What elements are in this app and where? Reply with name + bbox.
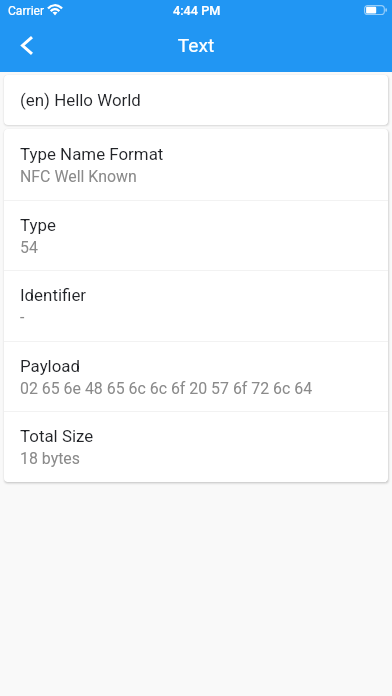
staticText: - (20, 308, 25, 327)
staticText: Type Name Format (20, 144, 164, 164)
button[interactable]: Type Name Format (4, 129, 388, 200)
staticText: 18 bytes (20, 449, 80, 468)
button[interactable]: Type (4, 200, 388, 271)
staticText: Identifier (20, 285, 87, 305)
button[interactable]: Identifier (4, 270, 388, 341)
staticText: NFC Well Known (20, 167, 137, 186)
button[interactable]: Total Size (4, 411, 388, 482)
button[interactable]: Payload (4, 341, 388, 412)
staticText: Text (0, 34, 392, 57)
staticText: 54 (20, 238, 38, 257)
staticText: Type (20, 215, 56, 235)
staticText: (en) Hello World (20, 90, 141, 110)
staticText: 02 65 6e 48 65 6c 6c 6f 20 57 6f 72 6c 6… (20, 379, 313, 398)
staticText: 4:44 PM (173, 3, 221, 18)
staticText: Total Size (20, 426, 94, 446)
staticText: Carrier (8, 4, 45, 18)
button[interactable]: (en) Hello World (4, 75, 388, 125)
button[interactable]: Back (4, 23, 49, 67)
staticText: Payload (20, 356, 81, 376)
